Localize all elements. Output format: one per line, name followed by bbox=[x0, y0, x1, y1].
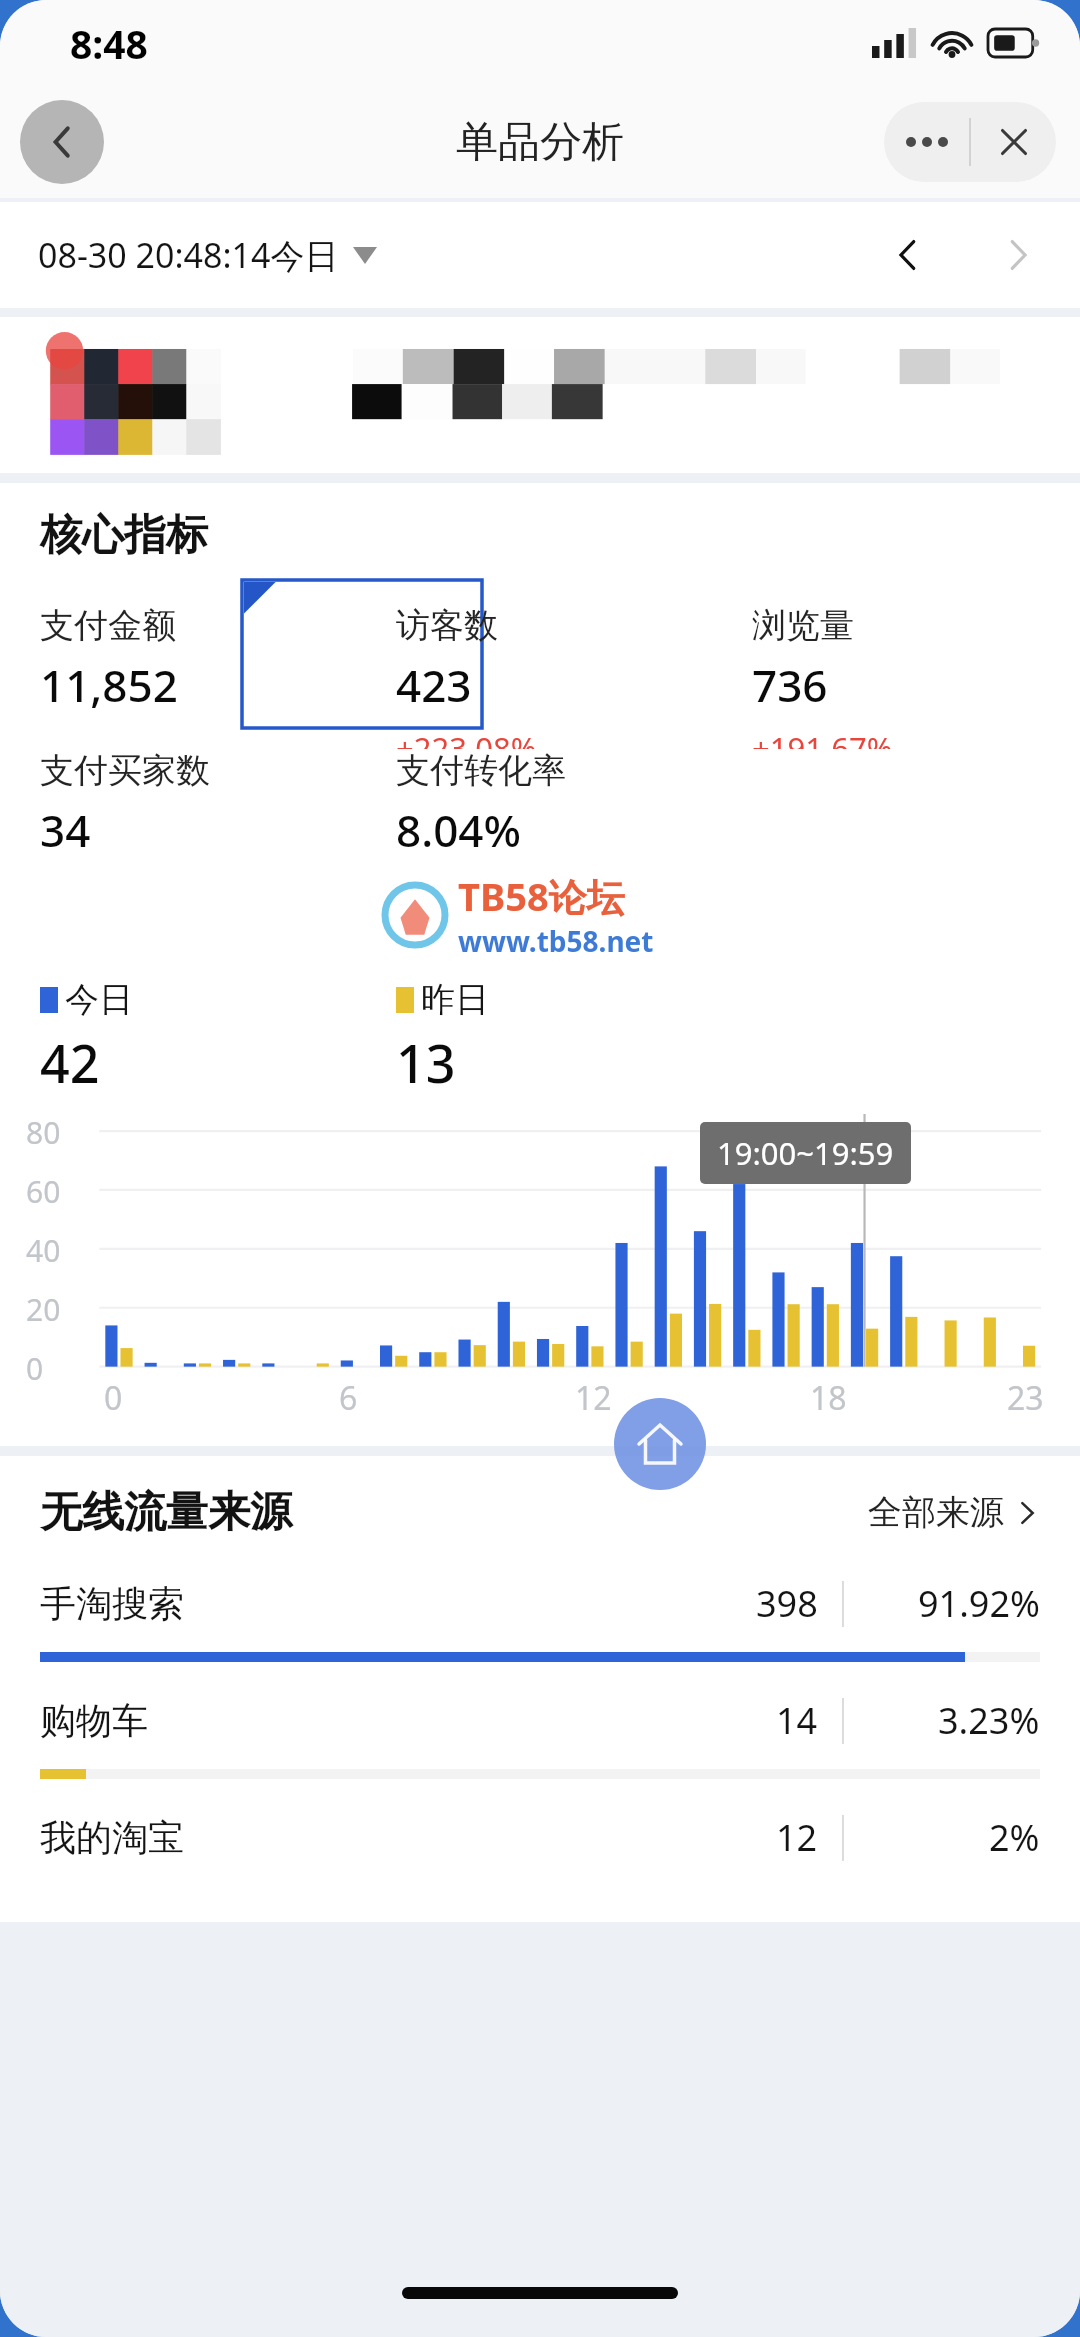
button[interactable]: 浏览量 bbox=[752, 604, 1080, 749]
staticText: 6 bbox=[339, 1376, 358, 1420]
staticText: 91.92% bbox=[918, 1579, 1040, 1628]
staticText: 12 bbox=[776, 1813, 818, 1862]
staticText: 单品分析 bbox=[456, 116, 624, 169]
button[interactable]: 08-30 20:48:14今日 bbox=[38, 232, 377, 278]
staticText: 08-30 20:48:14今日 bbox=[38, 232, 339, 278]
staticText: 14 bbox=[776, 1696, 818, 1745]
staticText: 购物车 bbox=[40, 1698, 148, 1743]
staticText: 18 bbox=[810, 1376, 847, 1420]
staticText: 3.23% bbox=[938, 1696, 1040, 1745]
staticText: 手淘搜索 bbox=[40, 1581, 184, 1626]
button[interactable]: More options bbox=[884, 102, 969, 182]
staticText: 40 bbox=[26, 1230, 61, 1271]
staticText: 支付金额 bbox=[40, 604, 176, 647]
staticText: 0 bbox=[26, 1348, 44, 1389]
button[interactable]: Next day bbox=[986, 223, 1050, 287]
button[interactable]: Close bbox=[971, 102, 1056, 182]
staticText: 2% bbox=[989, 1813, 1040, 1862]
staticText: 无线流量来源 bbox=[40, 1486, 292, 1539]
staticText: www.tb58.net bbox=[458, 922, 654, 960]
staticText: 34 bbox=[40, 800, 91, 860]
button[interactable]: 全部来源 bbox=[868, 1491, 1040, 1534]
button[interactable]: 我的淘宝 bbox=[40, 1813, 1040, 1862]
staticText: 8:48 bbox=[70, 17, 148, 70]
button[interactable]: 支付转化率 bbox=[396, 749, 720, 860]
staticText: 60 bbox=[26, 1171, 61, 1212]
staticText: 支付买家数 bbox=[40, 749, 210, 792]
button[interactable]: 支付买家数 bbox=[40, 749, 360, 860]
button[interactable] bbox=[242, 580, 482, 728]
staticText: 支付转化率 bbox=[396, 749, 566, 792]
staticText: 11,852 bbox=[40, 655, 178, 715]
button[interactable] bbox=[0, 317, 1080, 473]
staticText: 访客数 bbox=[396, 604, 498, 647]
staticText: 80 bbox=[26, 1112, 61, 1153]
staticText: 全部来源 bbox=[868, 1491, 1004, 1534]
staticText: 20 bbox=[26, 1289, 61, 1330]
staticText: 42 bbox=[40, 1027, 100, 1098]
staticText: 浏览量 bbox=[752, 604, 854, 647]
staticText: 12 bbox=[575, 1376, 612, 1420]
staticText: 423 bbox=[396, 655, 472, 715]
button[interactable]: 手淘搜索 bbox=[0, 1579, 1080, 1662]
button[interactable]: 支付金额 bbox=[40, 604, 360, 715]
staticText: 昨日 bbox=[421, 978, 489, 1021]
staticText: 398 bbox=[756, 1579, 818, 1628]
staticText: 8.04% bbox=[396, 800, 521, 860]
staticText: 23 bbox=[1007, 1376, 1044, 1420]
button[interactable]: 购物车 bbox=[0, 1696, 1080, 1779]
staticText: 13 bbox=[396, 1027, 456, 1098]
staticText: 我的淘宝 bbox=[40, 1815, 184, 1860]
staticText: TB58论坛 bbox=[458, 870, 625, 922]
button[interactable]: 访客数 bbox=[396, 604, 720, 749]
button[interactable]: Previous day bbox=[876, 223, 940, 287]
staticText: 19:00~19:59 bbox=[717, 1132, 894, 1174]
staticText: 0 bbox=[104, 1376, 123, 1420]
button[interactable]: Back bbox=[20, 100, 104, 184]
staticText: 今日 bbox=[65, 978, 133, 1021]
staticText: +191.67% bbox=[752, 727, 893, 749]
button[interactable]: Home bbox=[614, 1398, 706, 1490]
staticText: 核心指标 bbox=[40, 509, 208, 562]
staticText: +223.08% bbox=[396, 727, 537, 749]
staticText: 736 bbox=[752, 655, 828, 715]
